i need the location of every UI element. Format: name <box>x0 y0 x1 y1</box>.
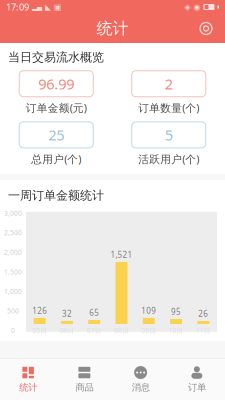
staticText: ▣ <box>54 2 62 12</box>
staticText: 109 <box>141 305 156 316</box>
staticText: 96.99 <box>38 74 74 93</box>
staticText: 65 <box>89 307 99 318</box>
staticText: 5 <box>165 125 173 145</box>
button[interactable]: 消息 <box>112 360 169 398</box>
staticText: 11日 <box>196 326 211 335</box>
staticText: 06日 <box>59 326 74 335</box>
button[interactable]: 统计 <box>0 360 56 398</box>
staticText: 95 <box>171 306 181 317</box>
staticText: 3,000 <box>4 209 22 218</box>
button[interactable]: 商品 <box>56 360 112 398</box>
staticText: 17:09 <box>6 1 29 13</box>
staticText: 订单金额(元) <box>26 101 87 115</box>
staticText: 统计 <box>19 381 37 393</box>
staticText: 05日 <box>32 326 47 335</box>
staticText: 统计 <box>96 19 128 38</box>
staticText: 一周订单金额统计 <box>8 188 104 203</box>
staticText: 当日交易流水概览 <box>8 50 104 65</box>
staticText: 1,500 <box>4 267 22 276</box>
staticText: 2 <box>165 74 173 93</box>
staticText: 订单数量(个) <box>138 101 199 115</box>
staticText: ◣ <box>45 2 51 12</box>
staticText: 126 <box>32 305 47 316</box>
button[interactable]: Settings <box>193 15 219 41</box>
staticText: 总用户(个) <box>31 152 81 166</box>
staticText: 500 <box>7 306 19 315</box>
staticText: 订单 <box>188 381 206 393</box>
staticText: 09日 <box>141 326 156 335</box>
staticText: ▂▄ <box>32 3 42 11</box>
staticText: 0 <box>11 326 15 335</box>
staticText: 07日 <box>87 326 102 335</box>
staticText: 25 <box>48 125 64 145</box>
staticText: 10日 <box>169 326 184 335</box>
staticText: 活跃用户(个) <box>138 152 199 166</box>
staticText: 1,000 <box>4 287 22 296</box>
staticText: 26 <box>198 308 208 319</box>
staticText: 2,000 <box>4 248 22 257</box>
staticText: 2,500 <box>4 228 22 237</box>
staticText: 商品 <box>75 381 93 393</box>
button[interactable]: 订单 <box>169 360 225 398</box>
staticText: 1,521 <box>110 249 132 260</box>
staticText: 08日 <box>114 326 129 335</box>
staticText: 消息 <box>132 381 150 393</box>
staticText: ◈ ◉ <box>184 2 200 12</box>
staticText: 32 <box>62 308 72 319</box>
